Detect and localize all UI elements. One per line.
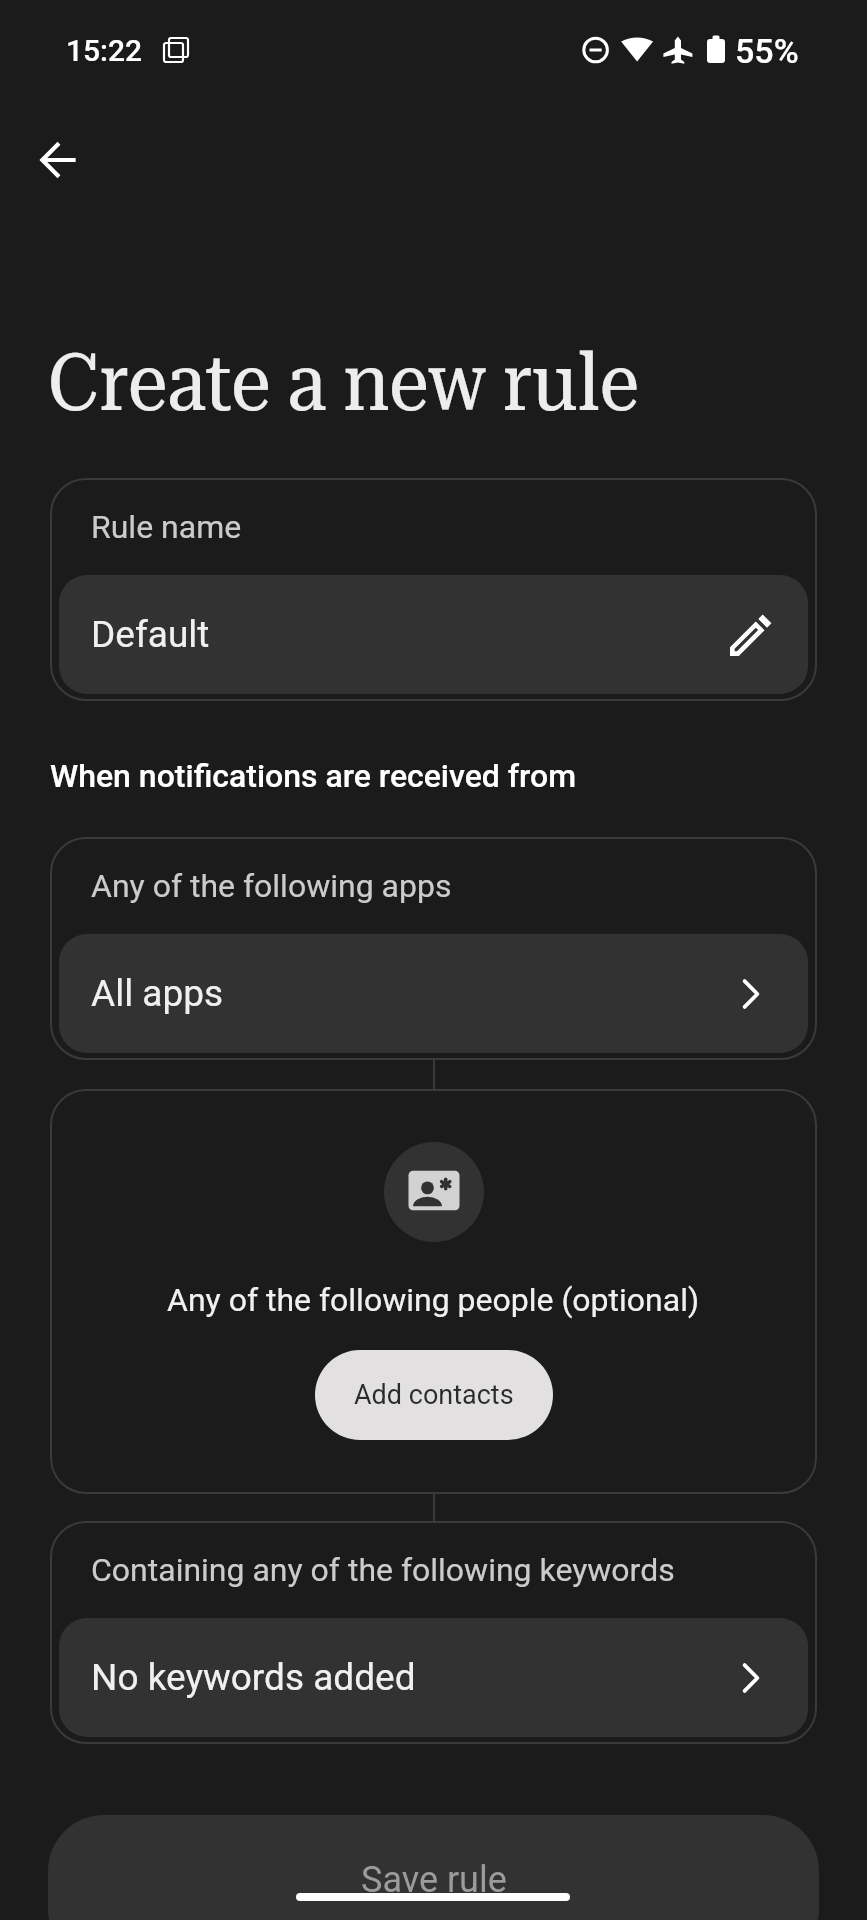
staticText: Save rule <box>361 1859 507 1901</box>
other: Open <box>723 966 779 1022</box>
other: Edit <box>723 607 779 663</box>
staticText: No keywords added <box>91 1656 416 1699</box>
staticText: Default <box>91 613 210 656</box>
other: Open <box>723 1650 779 1706</box>
staticText: When notifications are received from <box>50 757 577 795</box>
staticText: Any of the following people (optional) <box>167 1281 700 1319</box>
button[interactable]: No keywords added <box>59 1618 808 1737</box>
staticText: 55% <box>735 31 799 71</box>
staticText: Any of the following apps <box>91 867 452 905</box>
button[interactable]: Add contacts <box>315 1350 553 1440</box>
staticText: All apps <box>91 972 224 1015</box>
staticText: Containing any of the following keywords <box>91 1551 675 1589</box>
button[interactable]: Default <box>59 575 808 694</box>
staticText: Rule name <box>91 508 242 546</box>
staticText: 15:22 <box>66 33 143 68</box>
button[interactable]: Save rule <box>48 1815 819 1920</box>
button[interactable]: All apps <box>59 934 808 1053</box>
staticText: Create a new rule <box>48 336 640 430</box>
button[interactable]: Navigate up <box>22 123 96 197</box>
staticText: Add contacts <box>354 1379 514 1411</box>
